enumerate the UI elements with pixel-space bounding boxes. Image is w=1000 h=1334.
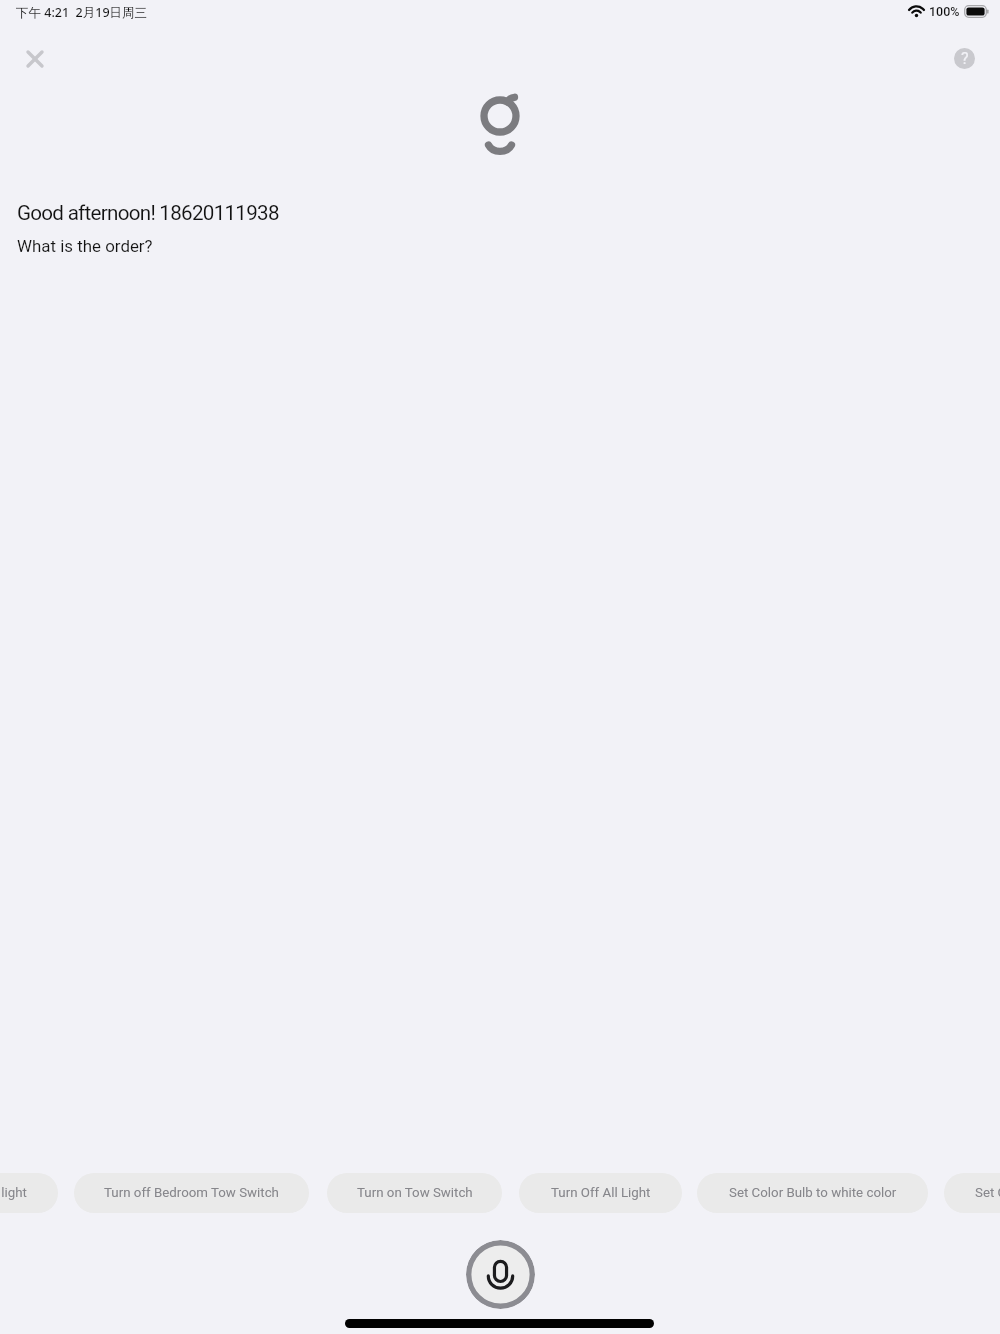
button[interactable]: Turn Off All Light <box>519 1173 682 1213</box>
staticText: What is the order? <box>17 236 153 256</box>
staticText: Turn off Bedroom Tow Switch <box>104 1185 279 1201</box>
button[interactable]: Microphone <box>466 1240 535 1309</box>
staticText: Good afternoon! 18620111938 <box>17 201 279 225</box>
staticText: Turn on Tow Switch <box>357 1185 473 1201</box>
button[interactable]: Set Color Bulb to white color <box>697 1173 928 1213</box>
staticText: Turn on Bedroom light <box>0 1185 27 1201</box>
button[interactable]: Help <box>942 36 987 81</box>
button[interactable]: Set Color Bulb to red color <box>944 1173 1000 1213</box>
staticText: Turn Off All Light <box>551 1185 651 1201</box>
staticText: 100% <box>929 4 960 19</box>
button[interactable]: Turn on Bedroom light <box>0 1173 58 1213</box>
staticText: Set Color Bulb to red color <box>975 1185 1000 1201</box>
button[interactable]: Close <box>13 37 57 81</box>
staticText: 下午 4:21 2月19日周三 <box>16 4 148 21</box>
staticText: Set Color Bulb to white color <box>729 1185 897 1201</box>
staticText: ? <box>961 49 969 68</box>
button[interactable]: Turn on Tow Switch <box>327 1173 502 1213</box>
button[interactable]: Turn off Bedroom Tow Switch <box>74 1173 309 1213</box>
